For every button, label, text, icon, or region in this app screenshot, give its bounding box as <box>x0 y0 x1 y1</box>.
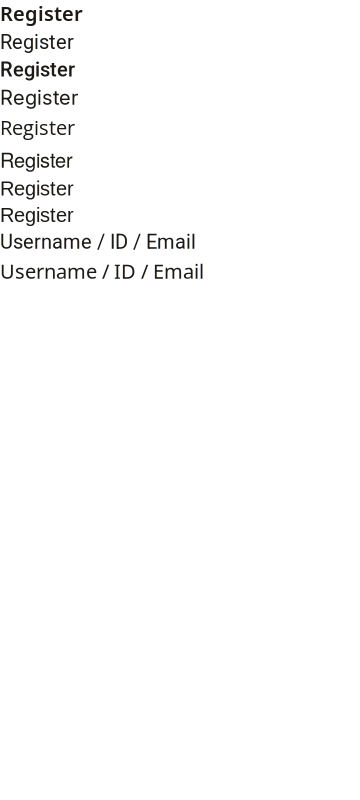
staticText: Register <box>0 204 74 226</box>
staticText: Register <box>0 31 74 54</box>
staticText: Register <box>0 177 74 200</box>
staticText: Register <box>0 145 73 173</box>
staticText: Register <box>0 0 83 27</box>
staticText: Register <box>0 58 75 81</box>
staticText: Username / ID / Email <box>0 258 204 284</box>
staticText: Username / ID / Email <box>0 230 196 254</box>
staticText: Register <box>0 85 78 110</box>
staticText: Register <box>0 114 75 141</box>
